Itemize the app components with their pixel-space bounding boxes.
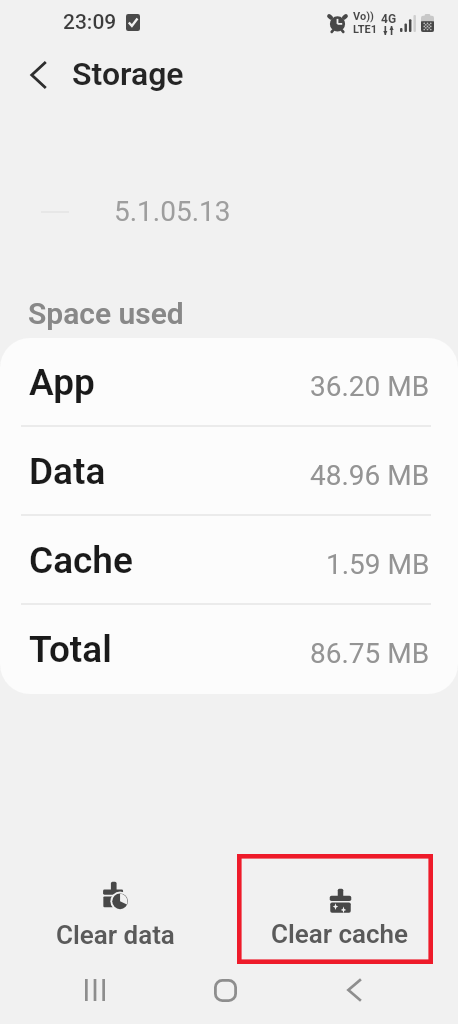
staticText: App <box>29 361 95 404</box>
button[interactable]: Cache <box>0 516 458 605</box>
staticText: Vo)) <box>353 10 374 23</box>
button[interactable]: Back <box>310 962 398 1018</box>
button[interactable]: App <box>0 338 458 427</box>
button[interactable]: Total <box>0 605 458 694</box>
staticText: 86.75 MB <box>310 637 430 670</box>
staticText: 48.96 MB <box>310 459 430 492</box>
button[interactable]: Back <box>14 51 62 99</box>
staticText: 5.1.05.13 <box>114 195 231 228</box>
staticText: Cache <box>29 539 133 582</box>
staticText: 36.20 MB <box>310 370 430 403</box>
staticText: 23:09 <box>63 10 117 35</box>
staticText: 4G <box>381 12 397 26</box>
button[interactable]: Recents <box>51 962 139 1018</box>
staticText: Clear data <box>56 920 175 950</box>
staticText: 1.59 MB <box>326 548 430 581</box>
staticText: Total <box>29 628 112 671</box>
button[interactable]: Clear data <box>23 855 207 965</box>
staticText: LTE1 <box>353 23 378 36</box>
staticText: Data <box>29 450 106 493</box>
staticText: Space used <box>28 296 184 331</box>
button[interactable]: Home <box>181 962 269 1018</box>
staticText: Clear cache <box>271 919 409 949</box>
button[interactable]: Data <box>0 427 458 516</box>
button[interactable]: Clear cache <box>248 855 432 965</box>
staticText: Storage <box>72 55 184 93</box>
